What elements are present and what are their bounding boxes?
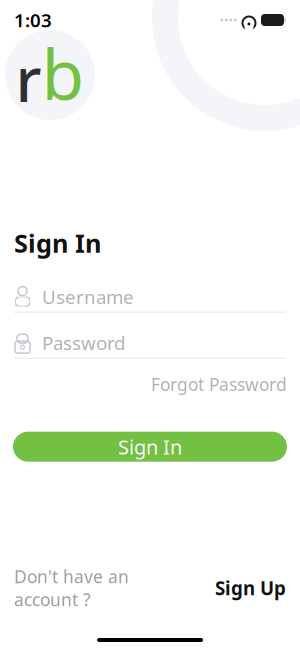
staticText: Sign In	[14, 226, 101, 260]
button[interactable]: Forgot Password	[151, 368, 287, 401]
staticText: r	[15, 38, 41, 119]
button[interactable]: Sign Up	[215, 576, 286, 600]
staticText: b	[41, 27, 84, 119]
staticText: Password	[42, 330, 125, 355]
staticText: Sign In	[118, 433, 182, 460]
staticText: 1:03	[14, 8, 52, 32]
staticText: Forgot Password	[151, 373, 287, 396]
staticText: Sign Up	[215, 576, 286, 600]
staticText: Username	[42, 284, 134, 309]
staticText: Don't have an account ?	[14, 565, 129, 611]
button[interactable]: Sign In	[13, 432, 287, 462]
